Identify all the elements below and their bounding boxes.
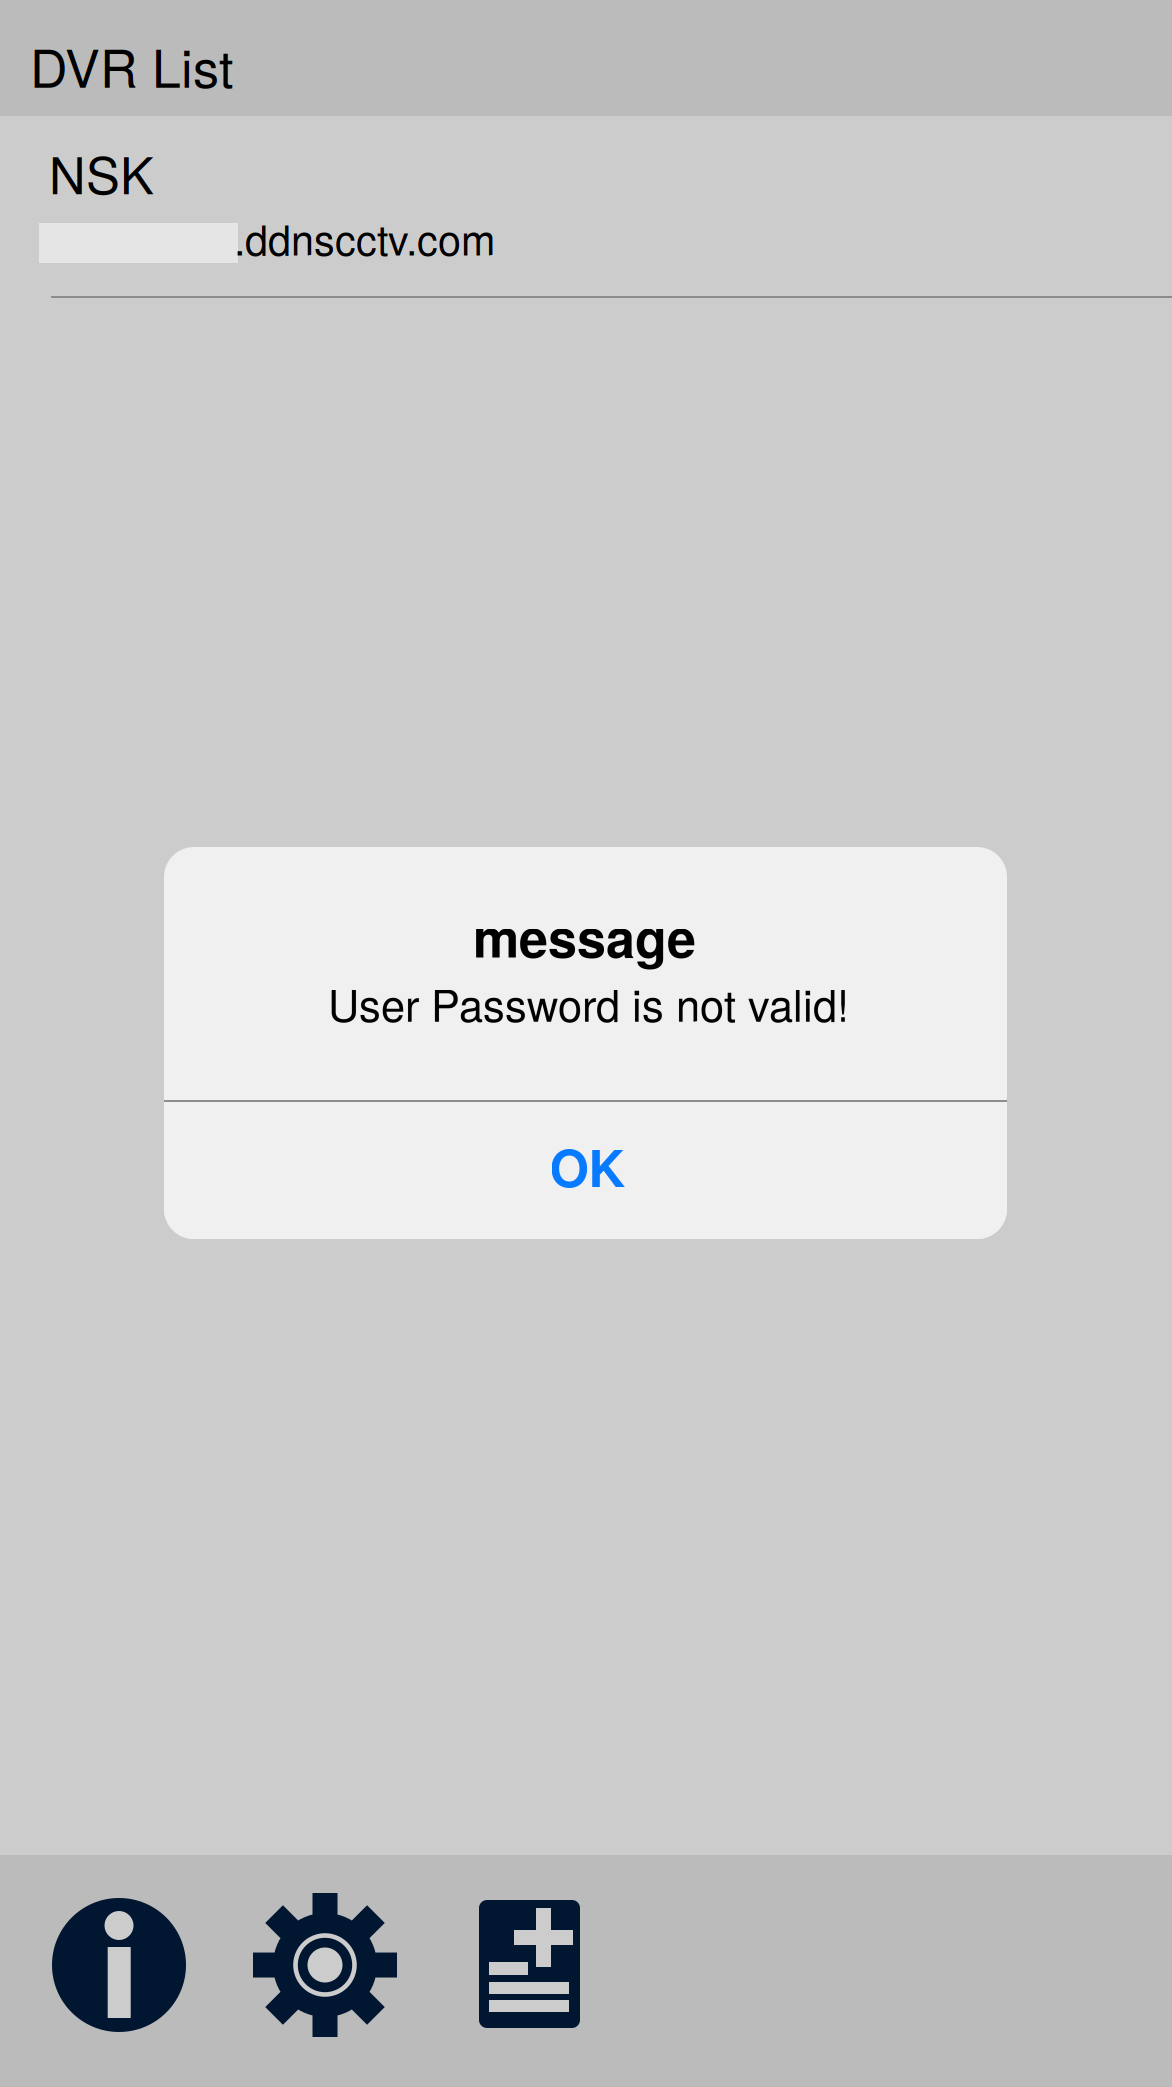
staticText: DVR List [30,28,233,102]
staticText: .ddnscctv.com [234,208,495,267]
button[interactable]: Info [52,1898,186,2032]
staticText: OK [549,1130,625,1203]
button[interactable]: Add DVR [479,1900,580,2028]
staticText: NSK [49,136,154,209]
button[interactable]: NSK [0,116,1172,298]
staticText: User Password is not valid! [328,972,849,1034]
staticText: message [473,899,696,973]
button[interactable]: OK [164,1102,1007,1239]
button[interactable]: Settings [253,1893,397,2037]
